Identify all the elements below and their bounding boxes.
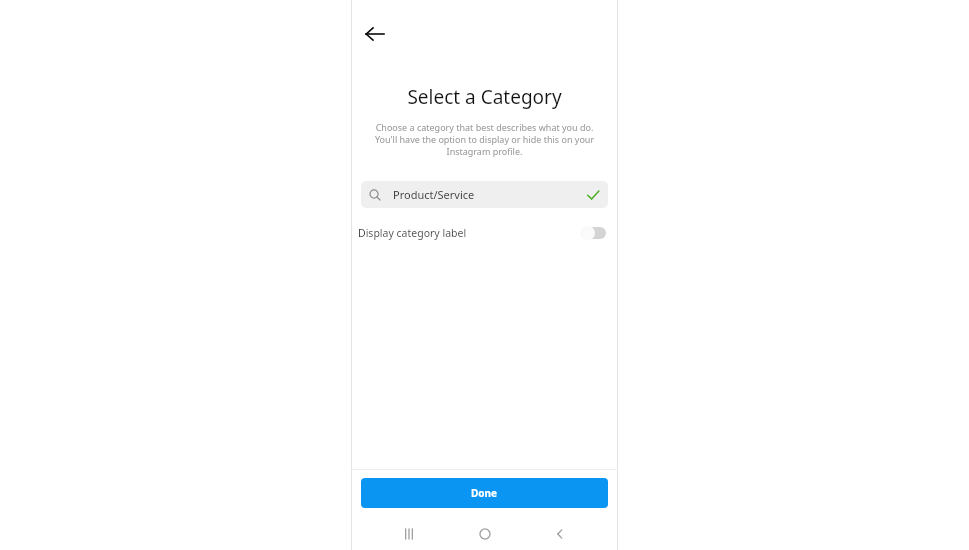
button[interactable]: Done [361,478,608,508]
button[interactable]: Recents [392,518,426,550]
button[interactable]: Home [468,518,502,550]
button[interactable]: Back [357,16,393,52]
staticText: Product/Service [393,187,475,202]
button[interactable]: Display category label [351,219,618,247]
staticText: Select a Category [407,84,562,110]
staticText: Choose a category that best describes wh… [369,121,600,157]
button[interactable]: Product/Service [361,181,608,208]
staticText: Display category label [358,226,467,240]
button[interactable]: Back [543,518,577,550]
staticText: Done [471,486,498,500]
